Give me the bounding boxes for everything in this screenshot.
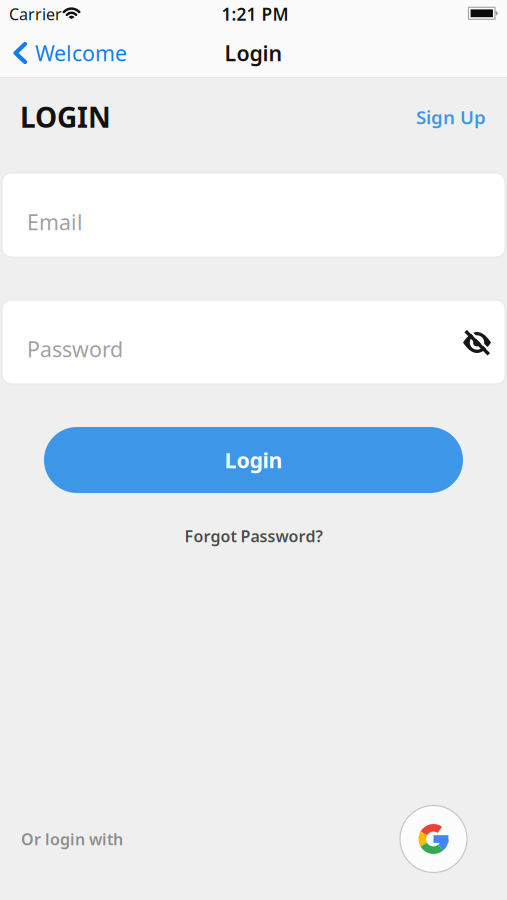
button[interactable] [463,330,491,354]
staticText: Email [27,208,83,236]
button[interactable] [400,805,467,872]
staticText: Password [27,335,123,363]
button[interactable]: Login [44,427,463,493]
staticText: Login [224,39,282,67]
button[interactable]: Welcome [3,39,127,67]
staticText: LOGIN [20,98,111,136]
button[interactable]: Password [2,300,505,384]
staticText: Welcome [35,39,127,67]
staticText: Carrier [9,3,62,25]
staticText: Sign Up [416,105,486,129]
button[interactable]: Sign Up [416,105,486,129]
staticText: Or login with [21,828,123,850]
button[interactable]: Forgot Password? [184,525,322,547]
button[interactable]: Email [2,173,505,257]
staticText: Forgot Password? [184,525,322,547]
staticText: Login [224,446,282,474]
staticText: 1:21 PM [221,2,288,25]
